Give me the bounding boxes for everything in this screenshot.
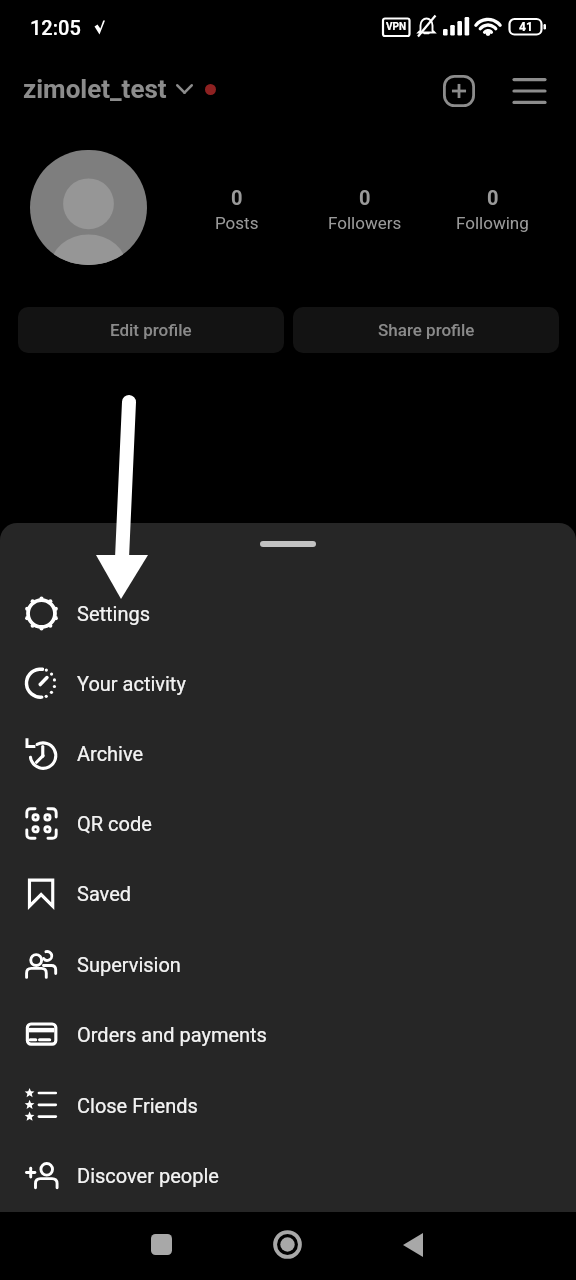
button[interactable]: Supervision [0,929,576,999]
staticText: 0 [359,186,371,209]
staticText: Discover people [77,1164,219,1187]
staticText: 41 [519,20,533,34]
staticText: Following [456,213,529,233]
button[interactable]: Archive [0,718,576,788]
staticText: QR code [77,812,152,835]
button[interactable]: 0 [422,186,562,246]
button[interactable]: Edit profile [18,307,284,353]
button[interactable]: Saved [0,858,576,928]
staticText: Settings [77,602,151,625]
button[interactable]: zimolet_test [23,74,216,104]
button[interactable]: Settings [0,578,576,648]
button[interactable]: Menu [507,69,551,113]
button[interactable]: Home [261,1218,314,1271]
staticText: Your activity [77,672,186,695]
button[interactable]: 0 [295,186,435,246]
button[interactable]: 0 [167,186,307,246]
staticText: Posts [215,213,259,233]
staticText: Orders and payments [77,1023,267,1046]
staticText: zimolet_test [23,74,167,104]
button[interactable]: Close Friends [0,1070,576,1140]
staticText: Share profile [378,320,475,340]
button[interactable]: Orders and payments [0,999,576,1069]
staticText: 0 [231,186,243,209]
button[interactable]: QR code [0,788,576,858]
button[interactable]: Your activity [0,648,576,718]
staticText: Saved [77,882,132,905]
staticText: Edit profile [110,320,192,340]
staticText: Close Friends [77,1094,198,1117]
staticText: 12:05 [30,16,81,39]
button[interactable] [30,150,147,265]
button[interactable]: Discover people [0,1140,576,1210]
button[interactable]: Share profile [293,307,559,353]
staticText: Supervision [77,953,181,976]
button[interactable]: Recents [135,1218,188,1271]
staticText: 0 [487,186,499,209]
button[interactable]: Back [386,1218,439,1271]
staticText: Followers [328,213,402,233]
staticText: VPN [386,21,407,33]
staticText: Archive [77,742,144,765]
button[interactable]: Create [437,69,481,113]
